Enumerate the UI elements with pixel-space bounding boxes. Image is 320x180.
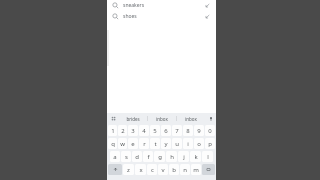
- staticText: 2: [121, 127, 125, 135]
- staticText: f: [147, 153, 150, 161]
- staticText: inbox: [185, 116, 197, 122]
- button[interactable]: m: [191, 164, 201, 175]
- button[interactable]: 4: [139, 125, 149, 136]
- button[interactable]: i: [183, 138, 193, 149]
- staticText: v: [161, 166, 165, 174]
- staticText: u: [175, 140, 179, 148]
- staticText: 7: [175, 127, 179, 135]
- button[interactable]: n: [180, 164, 190, 175]
- staticText: e: [131, 140, 135, 148]
- button[interactable]: a: [110, 151, 120, 162]
- button[interactable]: v: [158, 164, 168, 175]
- button[interactable]: h: [166, 151, 177, 162]
- button[interactable]: shoes: [107, 11, 216, 22]
- staticText: brides: [126, 116, 140, 122]
- button[interactable]: 6: [161, 125, 171, 136]
- button[interactable]: brides: [119, 113, 147, 124]
- staticText: i: [187, 140, 189, 148]
- button[interactable]: u: [172, 138, 182, 149]
- button[interactable]: Backspace: [202, 164, 215, 175]
- staticText: y: [164, 140, 168, 148]
- button[interactable]: 5: [150, 125, 160, 136]
- button[interactable]: q: [108, 138, 117, 149]
- staticText: k: [194, 153, 198, 161]
- staticText: sneakers: [123, 2, 145, 9]
- button[interactable]: l: [202, 151, 213, 162]
- staticText: shoes: [123, 13, 137, 20]
- staticText: r: [143, 140, 146, 148]
- staticText: 5: [153, 127, 157, 135]
- button[interactable]: Shift: [108, 164, 122, 175]
- staticText: m: [193, 166, 199, 174]
- button[interactable]: Keyboard settings: [107, 113, 119, 124]
- staticText: 9: [197, 127, 201, 135]
- staticText: 6: [164, 127, 168, 135]
- button[interactable]: 2: [118, 125, 127, 136]
- button[interactable]: 9: [194, 125, 204, 136]
- staticText: 3: [131, 127, 135, 135]
- button[interactable]: t: [150, 138, 160, 149]
- button[interactable]: c: [147, 164, 157, 175]
- staticText: n: [183, 166, 187, 174]
- staticText: 8: [186, 127, 190, 135]
- staticText: 1: [111, 127, 115, 135]
- staticText: s: [125, 153, 128, 161]
- staticText: q: [111, 140, 115, 148]
- staticText: h: [170, 153, 174, 161]
- staticText: w: [120, 140, 125, 148]
- button[interactable]: d: [132, 151, 142, 162]
- button[interactable]: j: [178, 151, 189, 162]
- staticText: t: [154, 140, 157, 148]
- button[interactable]: e: [128, 138, 138, 149]
- button[interactable]: r: [139, 138, 149, 149]
- button[interactable]: k: [190, 151, 201, 162]
- button[interactable]: s: [121, 151, 131, 162]
- staticText: z: [127, 166, 130, 174]
- button[interactable]: 7: [172, 125, 182, 136]
- button[interactable]: sneakers: [107, 0, 216, 11]
- staticText: l: [207, 153, 209, 161]
- button[interactable]: y: [161, 138, 171, 149]
- staticText: inbox: [156, 116, 168, 122]
- button[interactable]: 8: [183, 125, 193, 136]
- button[interactable]: p: [205, 138, 215, 149]
- button[interactable]: z: [123, 164, 134, 175]
- button[interactable]: Insert suggestion: [204, 2, 211, 9]
- button[interactable]: inbox: [177, 113, 205, 124]
- staticText: g: [158, 153, 162, 161]
- button[interactable]: Voice input: [205, 113, 216, 124]
- button[interactable]: 1: [108, 125, 117, 136]
- staticText: 4: [142, 127, 146, 135]
- button[interactable]: b: [169, 164, 179, 175]
- button[interactable]: 3: [128, 125, 138, 136]
- button[interactable]: 0: [205, 125, 215, 136]
- button[interactable]: w: [118, 138, 127, 149]
- staticText: d: [135, 153, 139, 161]
- button[interactable]: x: [135, 164, 146, 175]
- staticText: 0: [208, 127, 212, 135]
- button[interactable]: inbox: [148, 113, 176, 124]
- staticText: o: [197, 140, 201, 148]
- staticText: j: [183, 153, 185, 161]
- button[interactable]: Insert suggestion: [204, 13, 211, 20]
- staticText: x: [139, 166, 143, 174]
- staticText: c: [151, 166, 154, 174]
- button[interactable]: o: [194, 138, 204, 149]
- button[interactable]: g: [154, 151, 165, 162]
- staticText: b: [172, 166, 176, 174]
- staticText: a: [113, 153, 117, 161]
- staticText: p: [208, 140, 212, 148]
- button[interactable]: f: [143, 151, 153, 162]
